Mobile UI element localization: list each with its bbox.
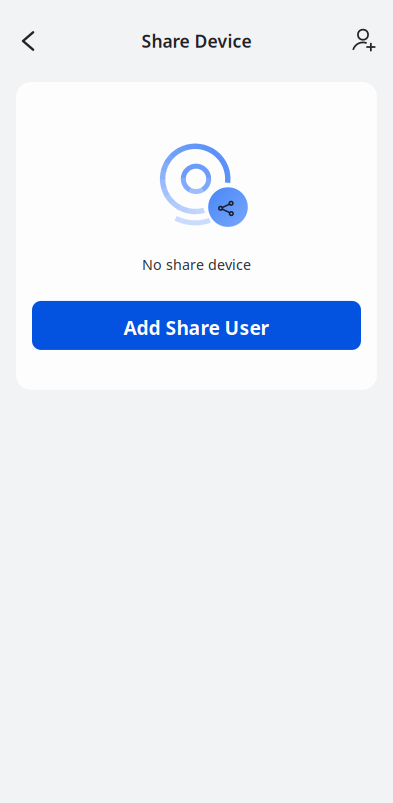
staticText: Share Device (141, 29, 251, 53)
button[interactable]: Add Share User (32, 301, 361, 350)
staticText: Add Share User (123, 315, 269, 340)
button[interactable]: Add user (342, 18, 388, 64)
button[interactable]: Back (5, 18, 51, 64)
staticText: No share device (142, 255, 251, 274)
